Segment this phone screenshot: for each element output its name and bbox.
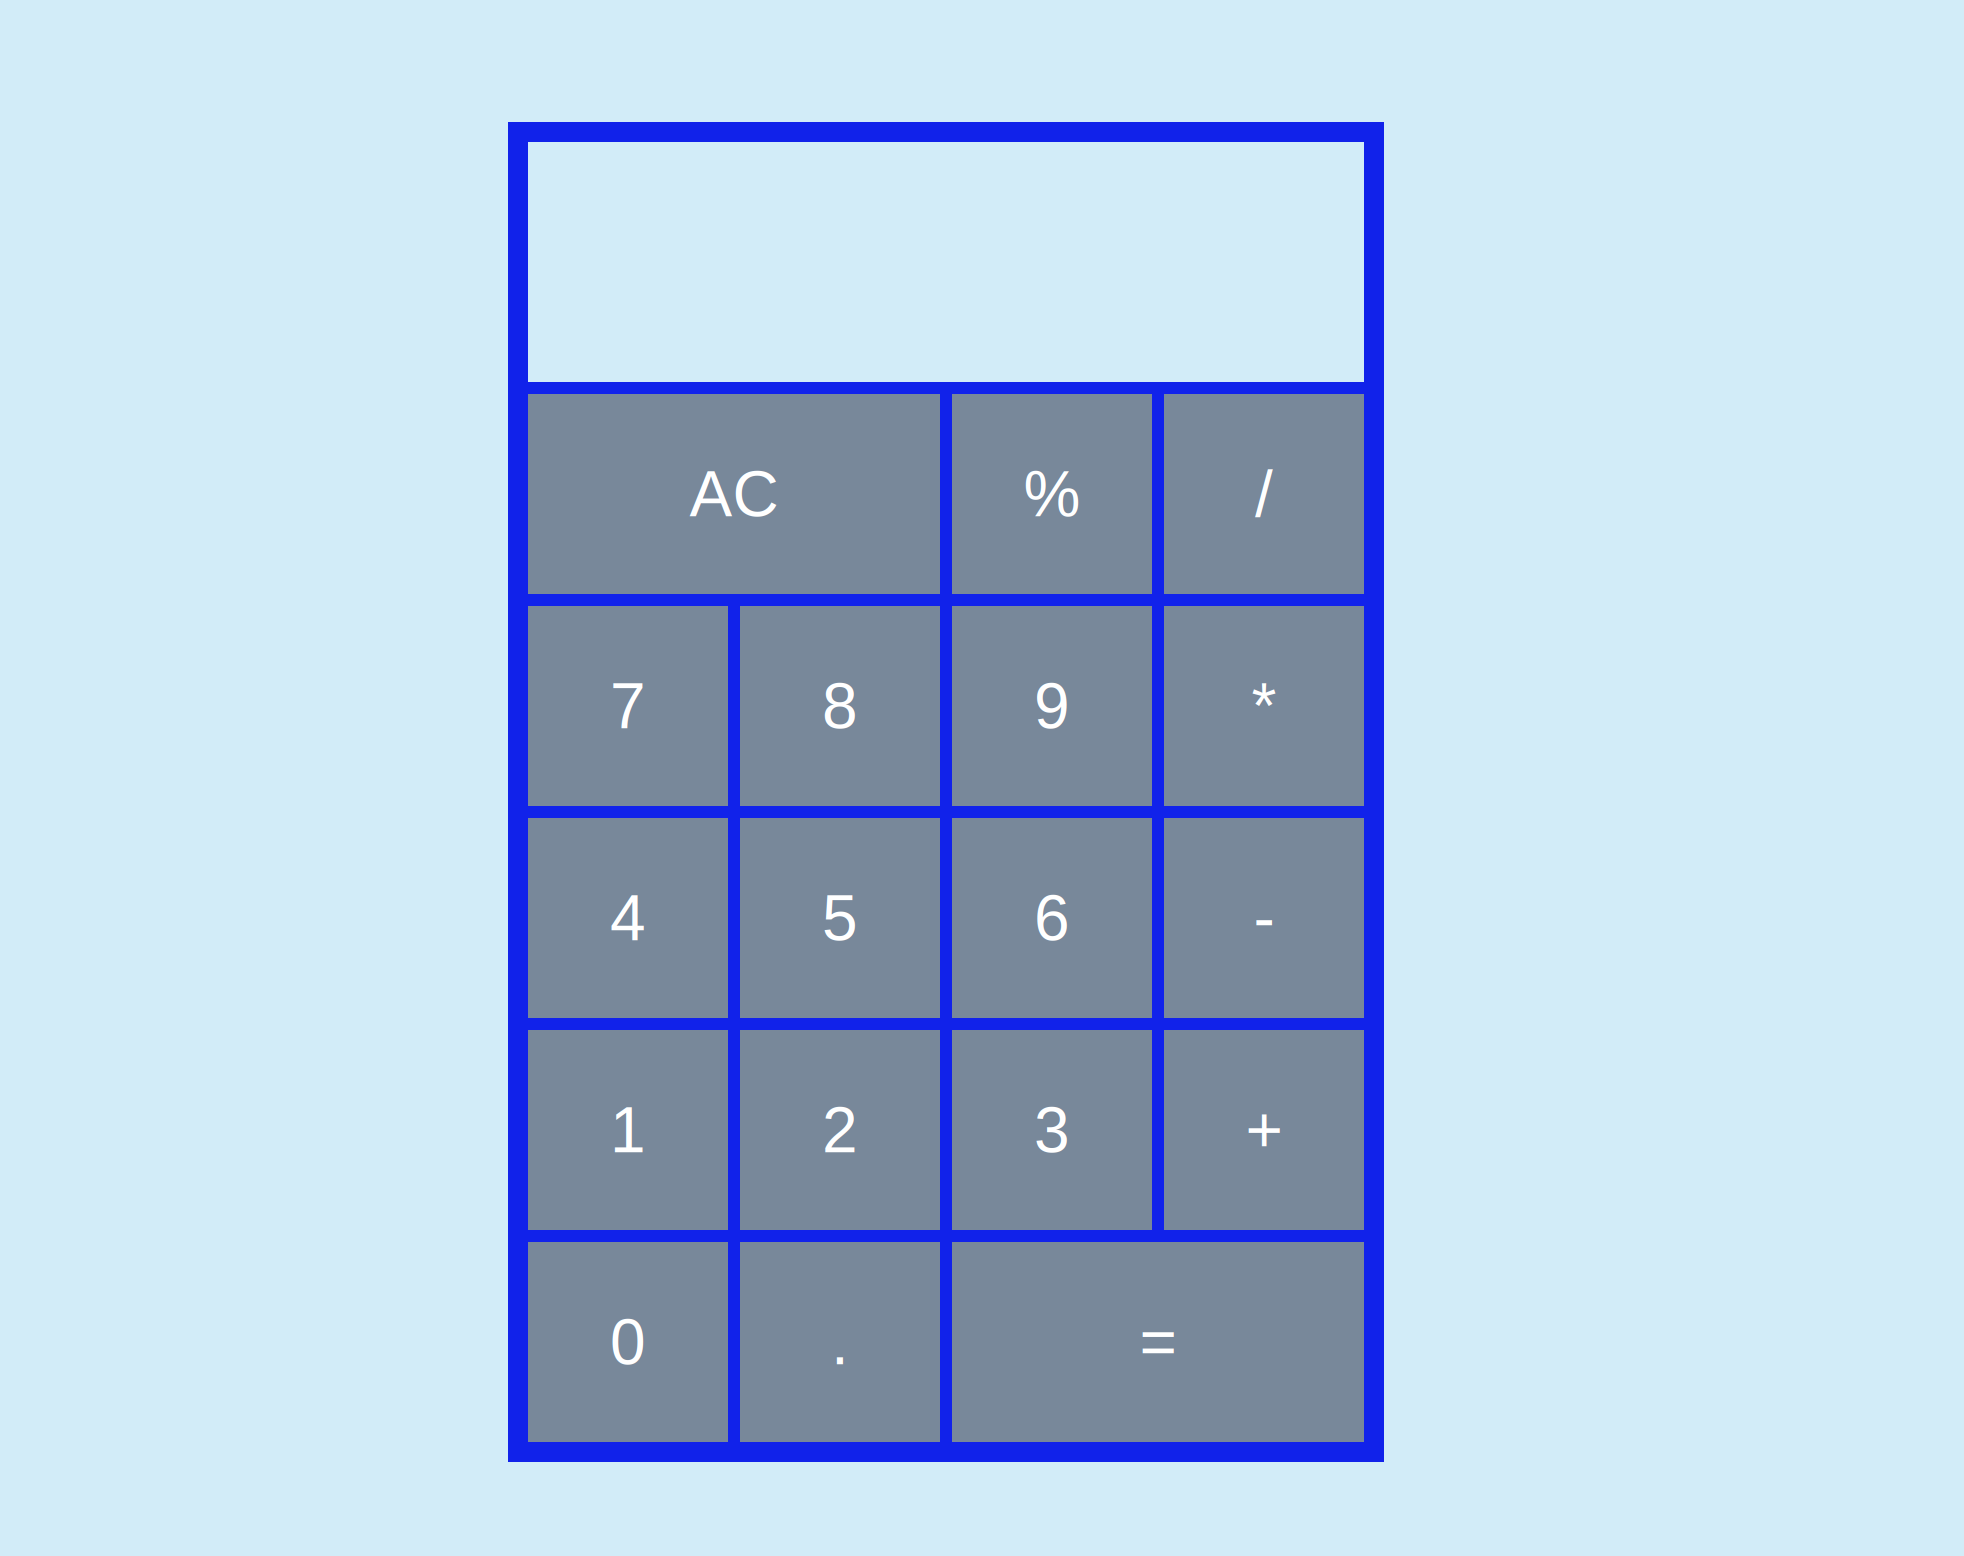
staticText: - <box>1253 882 1274 954</box>
button[interactable]: 7 <box>528 606 728 806</box>
button[interactable]: Percent <box>952 394 1152 594</box>
button[interactable]: 3 <box>952 1030 1152 1230</box>
button[interactable]: 0 <box>528 1242 728 1442</box>
staticText: 9 <box>1034 670 1070 742</box>
button[interactable]: Multiply <box>1164 606 1364 806</box>
staticText: % <box>1023 458 1080 530</box>
staticText: 7 <box>610 670 646 742</box>
button[interactable]: 6 <box>952 818 1152 1018</box>
staticText: * <box>1251 670 1276 742</box>
button[interactable]: All clear <box>528 394 940 594</box>
button[interactable]: Plus <box>1164 1030 1364 1230</box>
button[interactable]: Divide <box>1164 394 1364 594</box>
button[interactable]: 1 <box>528 1030 728 1230</box>
staticText: 0 <box>610 1306 646 1378</box>
button[interactable]: 8 <box>740 606 940 806</box>
button[interactable]: 5 <box>740 818 940 1018</box>
button[interactable]: 2 <box>740 1030 940 1230</box>
staticText: AC <box>689 458 778 530</box>
button[interactable]: Equals <box>952 1242 1364 1442</box>
staticText: 1 <box>610 1094 646 1166</box>
staticText: 8 <box>822 670 858 742</box>
button[interactable]: Minus <box>1164 818 1364 1018</box>
staticText: + <box>1245 1094 1282 1166</box>
staticText: = <box>1139 1306 1176 1378</box>
staticText: 2 <box>822 1094 858 1166</box>
button[interactable]: 9 <box>952 606 1152 806</box>
staticText: 6 <box>1034 882 1070 954</box>
staticText: 5 <box>822 882 858 954</box>
staticText: . <box>831 1306 849 1378</box>
staticText: / <box>1255 458 1273 530</box>
button[interactable]: Decimal point <box>740 1242 940 1442</box>
button[interactable]: 4 <box>528 818 728 1018</box>
staticText: 4 <box>610 882 646 954</box>
staticText: 3 <box>1034 1094 1070 1166</box>
